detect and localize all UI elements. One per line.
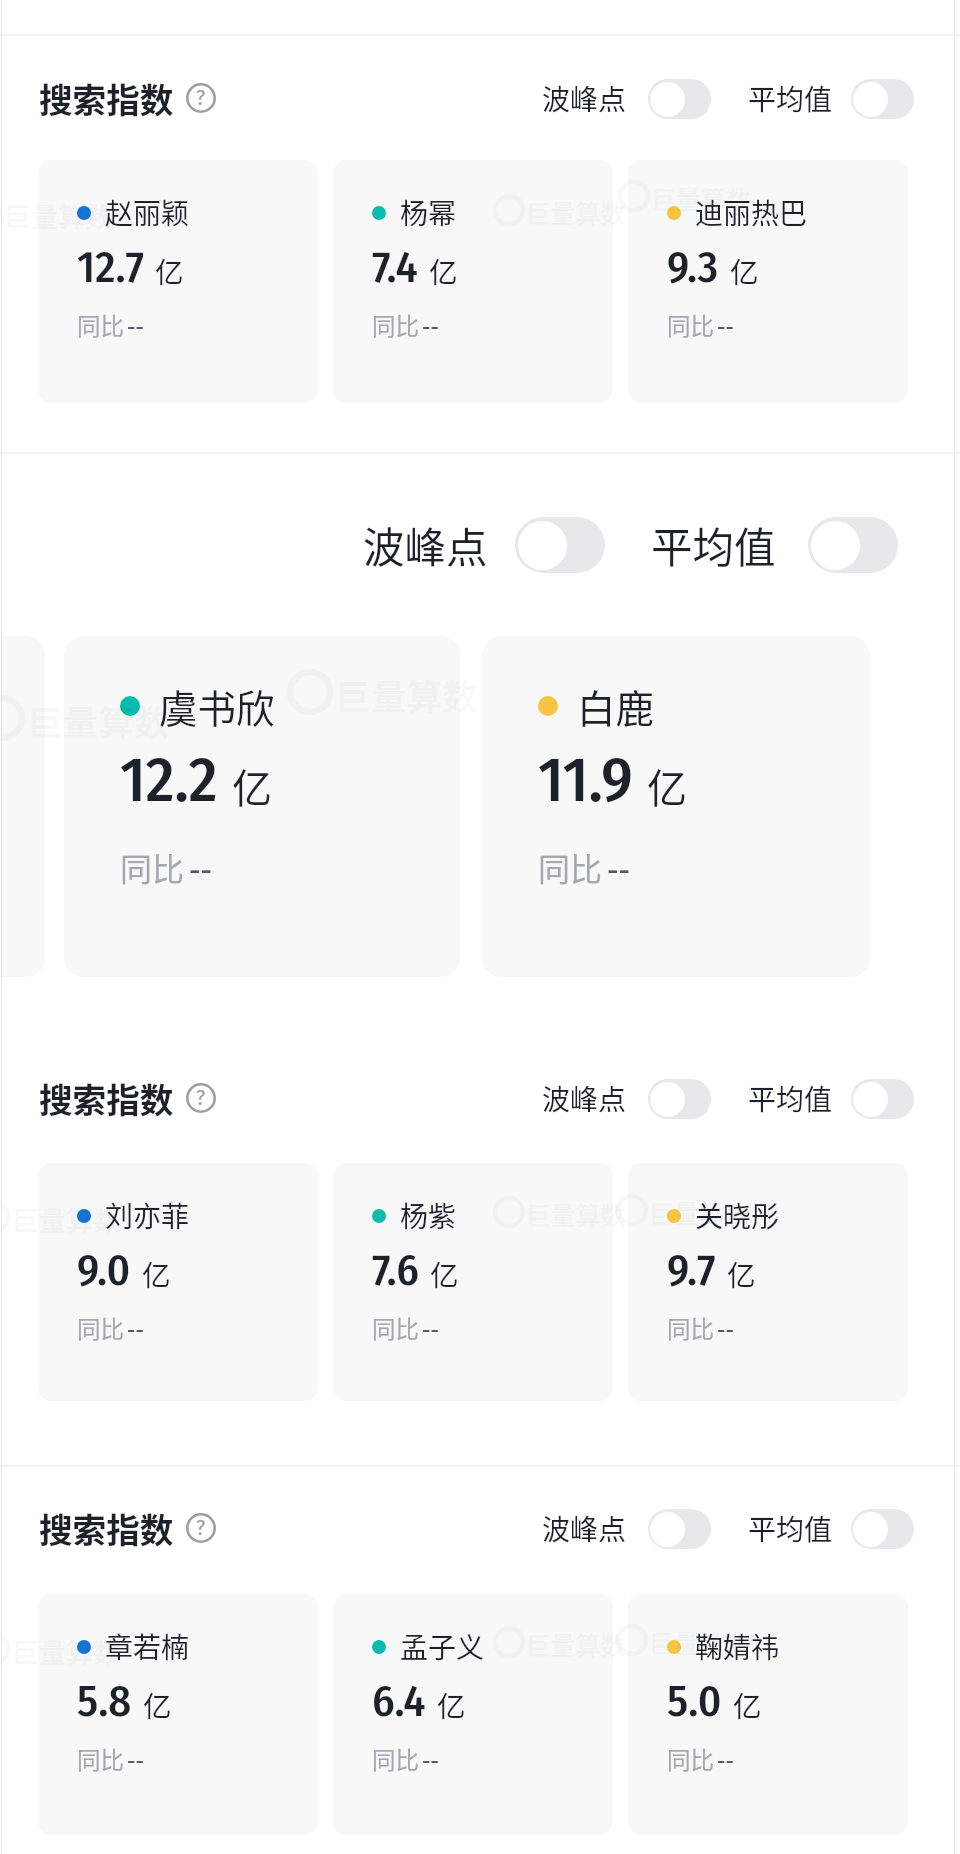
staticText: 迪丽热巴 — [695, 192, 808, 233]
staticText: ? — [196, 1084, 206, 1110]
button[interactable]: 波峰点 — [542, 1508, 711, 1549]
button[interactable]: 虞书欣 — [64, 636, 460, 977]
staticText: -- — [127, 1742, 144, 1776]
staticText: 杨幂 — [400, 192, 457, 233]
button[interactable]: Help — [185, 82, 217, 114]
button[interactable]: Toggle — [648, 1509, 711, 1549]
button[interactable]: Toggle — [851, 1079, 914, 1119]
staticText: 同比 — [372, 308, 419, 342]
staticText: 巨量算数 — [526, 1196, 626, 1232]
staticText: -- — [422, 1742, 439, 1776]
staticText: 波峰点 — [542, 1508, 627, 1549]
button[interactable]: Help — [185, 1082, 217, 1114]
button[interactable]: Toggle — [648, 79, 711, 119]
staticText: 搜索指数 — [39, 1074, 174, 1123]
staticText: 同比 — [667, 1311, 714, 1345]
staticText: 平均值 — [748, 1508, 833, 1549]
staticText: 亿 — [430, 1253, 459, 1294]
button[interactable]: 鞠婧祎 — [628, 1594, 908, 1835]
staticText: 搜索指数 — [39, 74, 174, 123]
staticText: -- — [422, 1311, 439, 1345]
button[interactable]: 章若楠 — [38, 1594, 318, 1835]
staticText: 波峰点 — [363, 515, 488, 575]
staticText: 白鹿 — [577, 678, 655, 734]
button[interactable]: 平均值 — [651, 515, 898, 575]
staticText: 同比 — [120, 844, 185, 890]
staticText: 刘亦菲 — [105, 1195, 190, 1236]
staticText: 同比 — [77, 1311, 124, 1345]
button[interactable]: Help — [185, 1512, 217, 1544]
button[interactable]: 平均值 — [748, 1078, 914, 1119]
staticText: 波峰点 — [542, 1078, 627, 1119]
button[interactable]: 波峰点 — [363, 515, 605, 575]
button[interactable]: 白鹿 — [482, 636, 870, 977]
staticText: 亿 — [429, 250, 458, 291]
staticText: -- — [422, 308, 439, 342]
button[interactable]: 孟子义 — [333, 1594, 613, 1835]
staticText: 巨量算数 — [4, 196, 112, 235]
staticText: ? — [196, 84, 206, 110]
button[interactable]: 赵丽颖 — [38, 160, 318, 403]
button[interactable]: 迪丽热巴 — [628, 160, 908, 403]
staticText: -- — [607, 844, 630, 890]
staticText: 鞠婧祎 — [695, 1626, 780, 1667]
staticText: 赵丽颖 — [105, 192, 190, 233]
staticText: 章若楠 — [105, 1626, 190, 1667]
staticText: 关晓彤 — [695, 1195, 780, 1236]
staticText: 平均值 — [748, 1078, 833, 1119]
staticText: 同比 — [667, 308, 714, 342]
staticText: 平均值 — [651, 515, 776, 575]
button[interactable]: 平均值 — [748, 1508, 914, 1549]
staticText: 亿 — [155, 250, 184, 291]
staticText: 虞书欣 — [159, 678, 275, 734]
staticText: 平均值 — [748, 78, 833, 119]
button[interactable]: Toggle — [851, 1509, 914, 1549]
staticText: 同比 — [667, 1742, 714, 1776]
button[interactable]: Toggle — [648, 1079, 711, 1119]
staticText: ? — [196, 1514, 206, 1540]
staticText: 12.7 — [77, 240, 144, 293]
staticText: 亿 — [143, 1684, 172, 1725]
staticText: 亿 — [727, 1253, 756, 1294]
staticText: 巨量算数 — [526, 194, 626, 230]
staticText: 搜索指数 — [39, 1504, 174, 1553]
staticText: 波峰点 — [542, 78, 627, 119]
staticText: 9.3 — [667, 240, 719, 293]
button[interactable]: 杨幂 — [333, 160, 613, 403]
button[interactable]: 平均值 — [748, 78, 914, 119]
staticText: 亿 — [142, 1253, 171, 1294]
staticText: 巨量算数 — [27, 695, 170, 747]
staticText: 同比 — [77, 308, 124, 342]
staticText: -- — [717, 1311, 734, 1345]
staticText: 亿 — [232, 757, 272, 815]
button[interactable]: Toggle — [808, 517, 898, 573]
staticText: -- — [717, 1742, 734, 1776]
staticText: 巨量算数 — [335, 669, 478, 721]
button[interactable]: 波峰点 — [542, 1078, 711, 1119]
staticText: 巨量算数 — [12, 1632, 120, 1671]
button[interactable]: 杨紫 — [333, 1163, 613, 1401]
staticText: 巨量算数 — [649, 1624, 749, 1660]
staticText: 巨量算数 — [651, 180, 751, 216]
staticText: -- — [189, 844, 212, 890]
staticText: 亿 — [733, 1684, 762, 1725]
button[interactable]: Toggle — [851, 79, 914, 119]
staticText: 7.4 — [372, 240, 418, 293]
staticText: 9.0 — [77, 1243, 131, 1296]
button[interactable]: 刘亦菲 — [38, 1163, 318, 1401]
button[interactable]: 关晓彤 — [628, 1163, 908, 1401]
button[interactable]: 波峰点 — [542, 78, 711, 119]
staticText: 同比 — [372, 1742, 419, 1776]
staticText: 5.0 — [667, 1674, 722, 1727]
staticText: -- — [127, 1311, 144, 1345]
staticText: 亿 — [730, 250, 759, 291]
button[interactable]: Toggle — [515, 517, 605, 573]
staticText: -- — [717, 308, 734, 342]
staticText: 孟子义 — [400, 1626, 485, 1667]
staticText: 亿 — [647, 757, 687, 815]
staticText: 12.2 — [120, 742, 218, 818]
staticText: -- — [127, 308, 144, 342]
staticText: 巨量算数 — [12, 1200, 120, 1239]
staticText: 巨量算数 — [526, 1626, 626, 1662]
staticText: 亿 — [437, 1684, 466, 1725]
